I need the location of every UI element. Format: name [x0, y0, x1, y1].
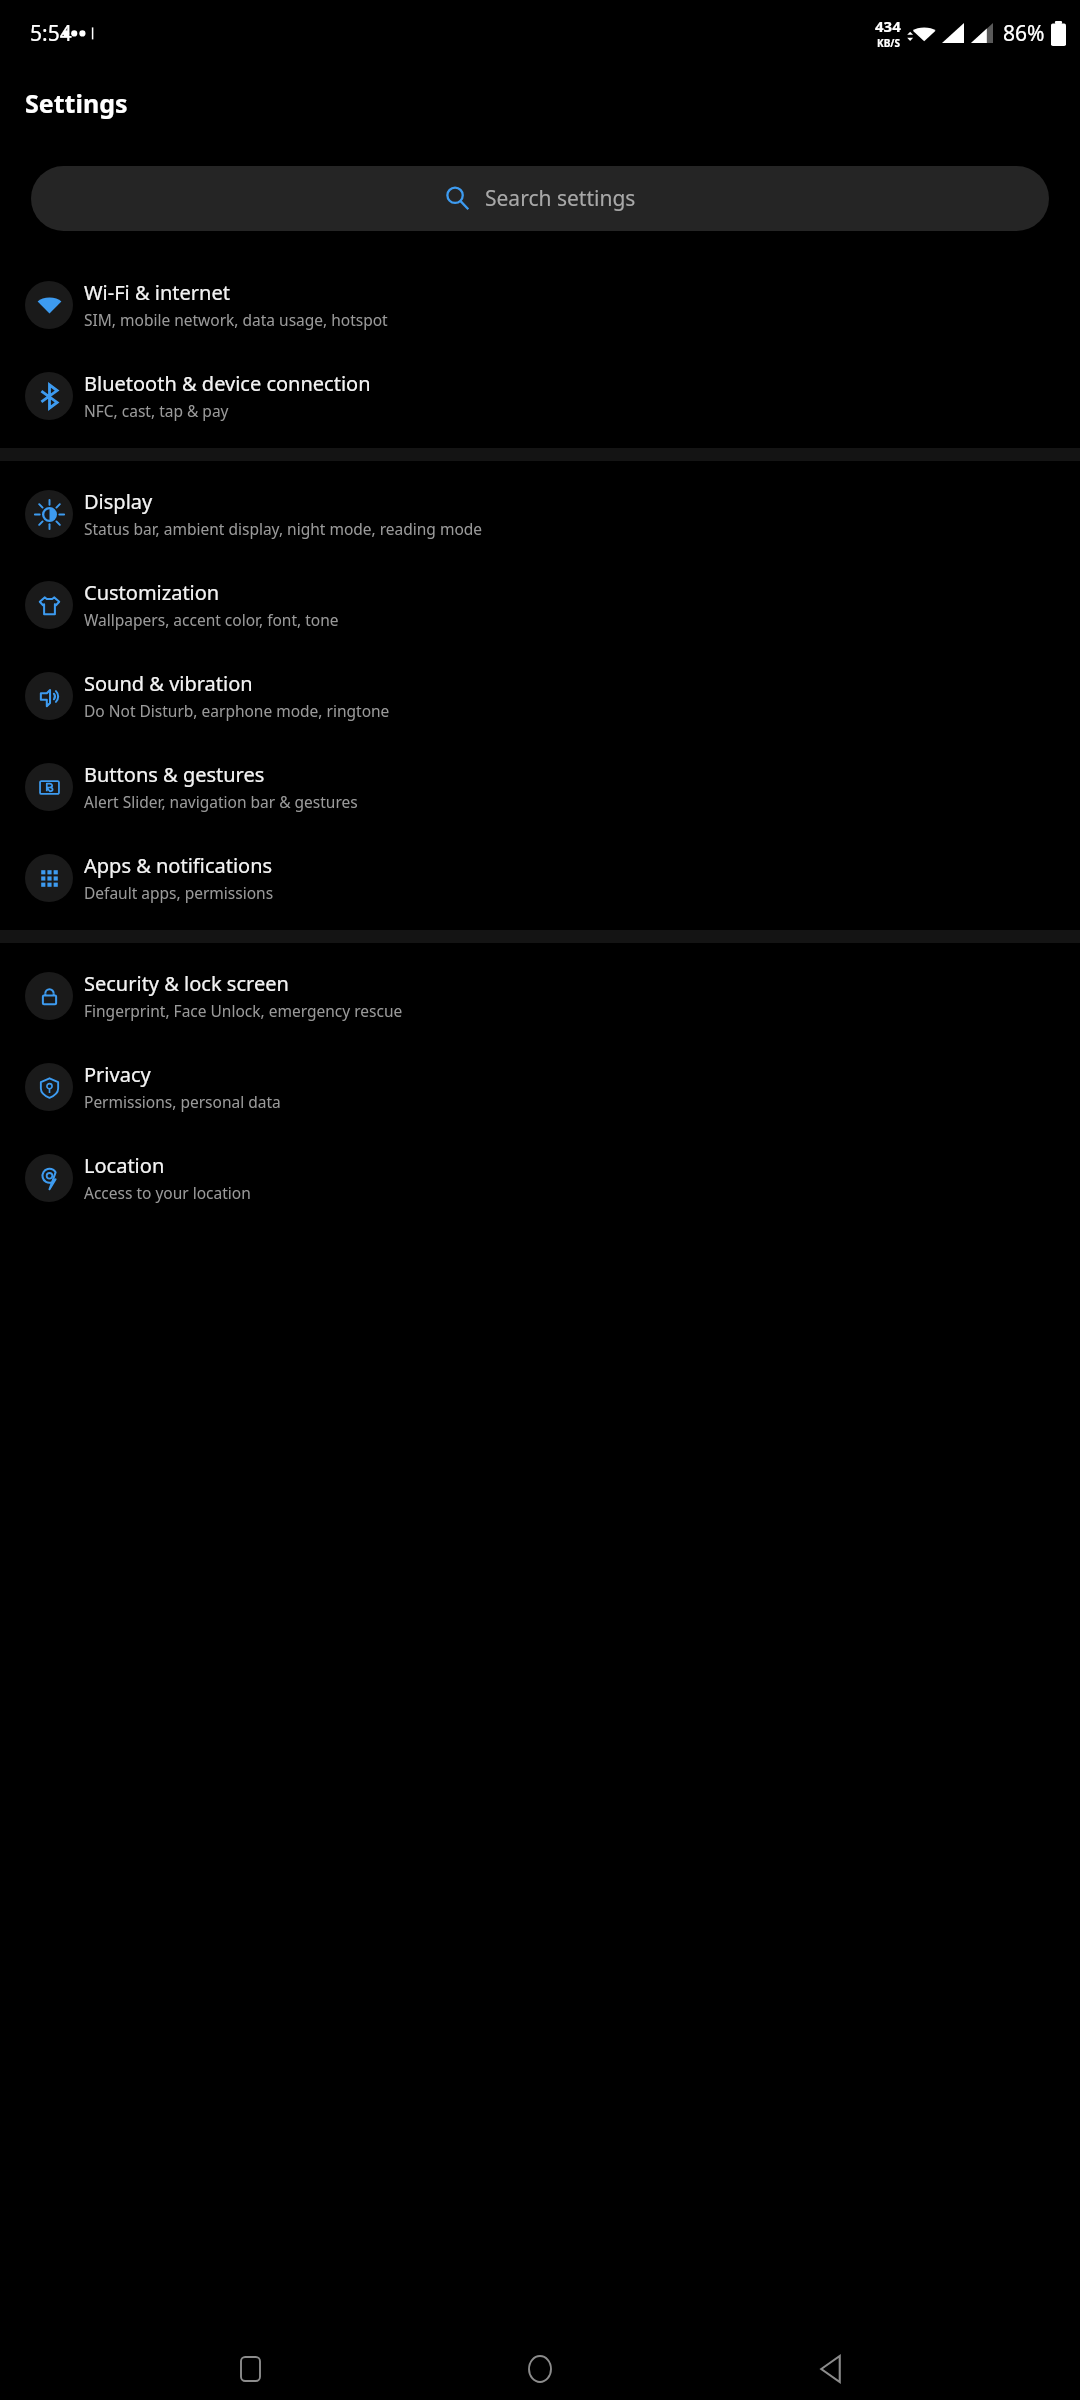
- staticText: Bluetooth & device connection: [84, 370, 371, 397]
- staticText: Wi-Fi & internet: [84, 279, 230, 306]
- button[interactable]: Location: [0, 1132, 1080, 1223]
- button[interactable]: Buttons & gestures: [0, 741, 1080, 832]
- button[interactable]: Back: [790, 2338, 870, 2400]
- staticText: Customization: [84, 579, 220, 606]
- staticText: Security & lock screen: [84, 970, 289, 997]
- staticText: NFC, cast, tap & pay: [84, 400, 229, 421]
- staticText: Privacy: [84, 1061, 151, 1088]
- staticText: Wallpapers, accent color, font, tone: [84, 609, 339, 630]
- staticText: Display: [84, 488, 153, 515]
- staticText: Status bar, ambient display, night mode,…: [84, 518, 483, 539]
- staticText: SIM, mobile network, data usage, hotspot: [84, 309, 388, 330]
- button[interactable]: Bluetooth & device connection: [0, 350, 1080, 441]
- staticText: Location: [84, 1152, 165, 1179]
- button[interactable]: Recent apps: [210, 2338, 290, 2400]
- button[interactable]: Search settings: [31, 166, 1049, 231]
- button[interactable]: Customization: [0, 559, 1080, 650]
- staticText: Fingerprint, Face Unlock, emergency resc…: [84, 1000, 403, 1021]
- staticText: Sound & vibration: [84, 670, 253, 697]
- staticText: Settings: [25, 86, 128, 120]
- staticText: Access to your location: [84, 1182, 251, 1203]
- staticText: Do Not Disturb, earphone mode, ringtone: [84, 700, 390, 721]
- button[interactable]: Home: [500, 2338, 580, 2400]
- staticText: Permissions, personal data: [84, 1091, 281, 1112]
- staticText: Apps & notifications: [84, 852, 273, 879]
- staticText: Default apps, permissions: [84, 882, 274, 903]
- button[interactable]: Display: [0, 468, 1080, 559]
- staticText: Search settings: [485, 184, 636, 213]
- button[interactable]: Privacy: [0, 1041, 1080, 1132]
- button[interactable]: Apps & notifications: [0, 832, 1080, 923]
- staticText: 434: [875, 16, 901, 36]
- staticText: KB/S: [877, 36, 900, 50]
- staticText: 86%: [1003, 19, 1045, 48]
- button[interactable]: Security & lock screen: [0, 950, 1080, 1041]
- staticText: 5:54: [30, 19, 72, 48]
- staticText: Alert Slider, navigation bar & gestures: [84, 791, 358, 812]
- button[interactable]: Sound & vibration: [0, 650, 1080, 741]
- staticText: Buttons & gestures: [84, 761, 265, 788]
- button[interactable]: Wi-Fi & internet: [0, 259, 1080, 350]
